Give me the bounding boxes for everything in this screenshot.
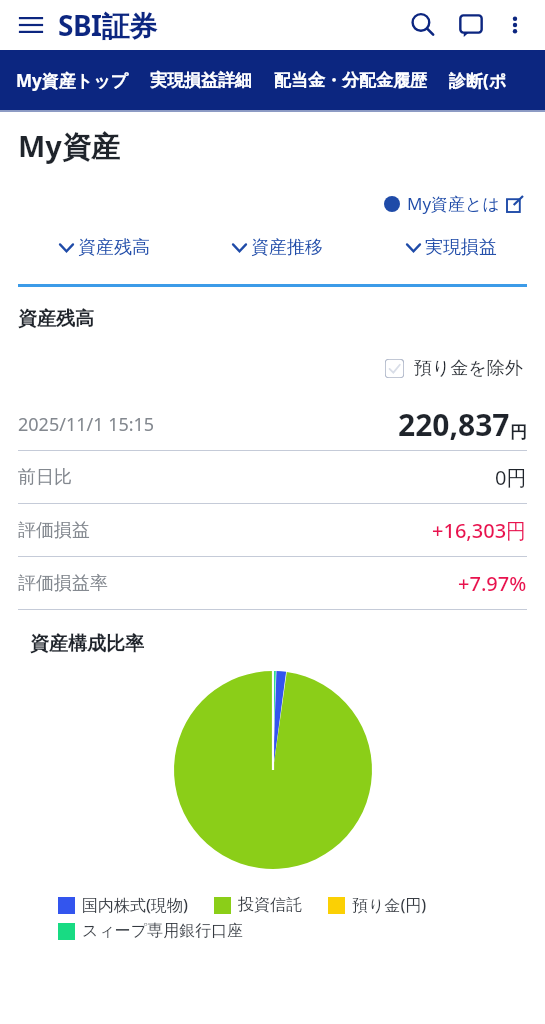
button[interactable]: 実現損益詳細 (150, 64, 252, 97)
button[interactable]: 資産残高 (60, 231, 150, 264)
staticText: 配当金・分配金履歴 (274, 70, 427, 91)
button[interactable]: 預り金を除外 (381, 353, 527, 384)
staticText: 診断(ポ (449, 69, 507, 92)
button[interactable]: 2025/11/1 15:15 (0, 398, 545, 450)
button[interactable]: 前日比 (0, 451, 545, 503)
button[interactable]: Menu (14, 8, 48, 42)
staticText: My資産 (18, 126, 120, 166)
button[interactable]: More options (495, 5, 535, 45)
button[interactable]: 投資信託 (214, 895, 302, 915)
staticText: 資産推移 (251, 236, 323, 259)
button[interactable]: 診断(ポ (449, 63, 507, 98)
button[interactable]: Chat (451, 5, 491, 45)
button[interactable]: 資産推移 (233, 231, 323, 264)
button[interactable]: 評価損益率 (0, 557, 545, 609)
button[interactable]: 評価損益 (0, 504, 545, 556)
button[interactable]: 預り金(円) (328, 894, 427, 916)
staticText: 資産残高 (78, 236, 150, 259)
staticText: +16,303円 (432, 517, 527, 544)
staticText: 前日比 (18, 466, 72, 489)
staticText: My資産とは (407, 192, 500, 215)
button[interactable]: Search (403, 5, 443, 45)
button[interactable]: SBI証券 (58, 6, 157, 44)
staticText: 実現損益 (425, 236, 497, 259)
staticText: 評価損益率 (18, 572, 108, 595)
staticText: 資産構成比率 (30, 632, 144, 656)
staticText: 円 (510, 422, 527, 443)
staticText: スィープ専用銀行口座 (82, 921, 244, 941)
staticText: 資産残高 (18, 307, 94, 331)
staticText: +7.97% (458, 570, 527, 597)
staticText: 国内株式(現物) (82, 894, 188, 916)
staticText: 2025/11/1 15:15 (18, 412, 155, 437)
staticText: My資産トップ (16, 69, 128, 92)
button[interactable]: スィープ専用銀行口座 (58, 921, 244, 941)
button[interactable]: My資産とは (384, 188, 523, 219)
button[interactable]: 配当金・分配金履歴 (274, 64, 427, 97)
staticText: 預り金を除外 (414, 357, 523, 380)
button[interactable]: My資産トップ (16, 63, 128, 98)
staticText: 220,837 (398, 404, 510, 445)
button[interactable]: 国内株式(現物) (58, 894, 188, 916)
button[interactable]: 実現損益 (407, 231, 497, 264)
staticText: 評価損益 (18, 519, 90, 542)
staticText: 預り金(円) (352, 894, 427, 916)
staticText: 実現損益詳細 (150, 70, 252, 91)
staticText: 投資信託 (238, 895, 302, 915)
staticText: 0円 (495, 464, 527, 491)
